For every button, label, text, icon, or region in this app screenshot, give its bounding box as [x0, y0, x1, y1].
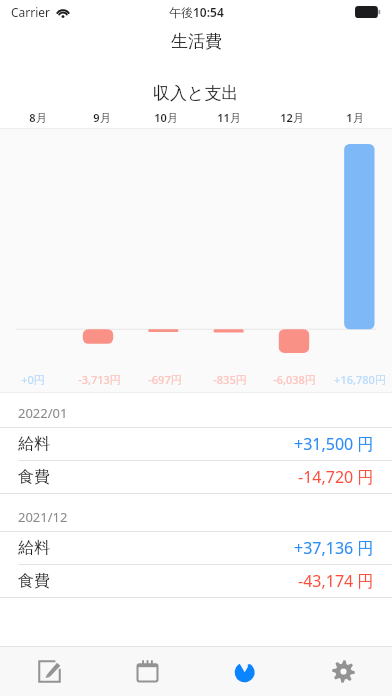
- staticText: 1月: [346, 110, 364, 125]
- staticText: 2022/01: [18, 404, 68, 422]
- staticText: 給料: [18, 434, 50, 454]
- staticText: 給料: [18, 538, 50, 558]
- staticText: -14,720 円: [298, 466, 374, 488]
- staticText: 午後10:54: [169, 4, 224, 20]
- staticText: 12月: [280, 110, 304, 125]
- staticText: 食費: [18, 571, 50, 591]
- staticText: -3,713円: [78, 372, 121, 387]
- button[interactable]: 給料: [0, 532, 392, 564]
- staticText: 8月: [29, 110, 47, 125]
- staticText: 10月: [154, 110, 178, 125]
- staticText: -835円: [213, 372, 247, 387]
- staticText: Carrier: [11, 4, 51, 20]
- button[interactable]: 食費: [0, 565, 392, 597]
- button[interactable]: Calendar: [98, 647, 196, 696]
- staticText: 9月: [93, 110, 111, 125]
- staticText: +16,780円: [334, 372, 386, 387]
- button[interactable]: 給料: [0, 428, 392, 460]
- staticText: 生活費: [171, 31, 222, 52]
- staticText: 11月: [217, 110, 241, 125]
- button[interactable]: Reports: [196, 647, 294, 696]
- staticText: +31,500 円: [294, 433, 374, 455]
- staticText: -43,174 円: [298, 570, 374, 592]
- staticText: -6,038円: [273, 372, 316, 387]
- staticText: +37,136 円: [294, 537, 374, 559]
- button[interactable]: Compose entry: [0, 647, 98, 696]
- button[interactable]: 食費: [0, 461, 392, 493]
- staticText: 食費: [18, 467, 50, 487]
- staticText: 収入と支出: [153, 83, 239, 104]
- staticText: -697円: [148, 372, 182, 387]
- staticText: 2021/12: [18, 508, 68, 526]
- staticText: +0円: [21, 372, 45, 387]
- button[interactable]: Settings: [294, 647, 392, 696]
